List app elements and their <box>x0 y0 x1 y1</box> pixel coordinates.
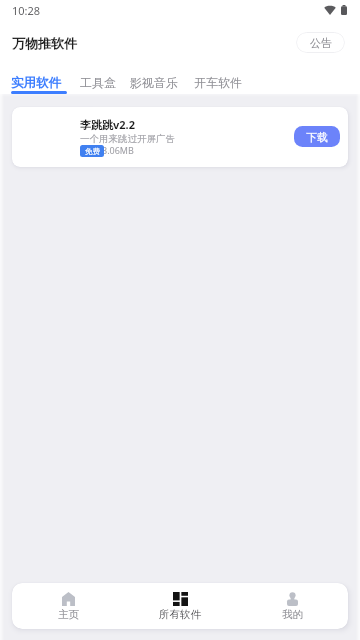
staticText: 影视音乐 <box>130 75 178 90</box>
button[interactable]: 公告 <box>296 32 345 53</box>
button[interactable]: 实用软件 <box>11 75 61 91</box>
staticText: 公告 <box>310 36 332 50</box>
staticText: 开车软件 <box>194 75 242 90</box>
button[interactable]: 工具盒 <box>80 75 116 90</box>
staticText: 所有软件 <box>159 608 201 621</box>
button[interactable]: 主页 <box>12 583 124 629</box>
button[interactable]: 李跳跳v2.2 <box>12 107 348 167</box>
staticText: 主页 <box>58 608 79 621</box>
staticText: 工具盒 <box>80 75 116 90</box>
staticText: 3.06MB <box>102 144 134 156</box>
staticText: 万物推软件 <box>12 35 77 51</box>
staticText: 下载 <box>306 130 328 144</box>
button[interactable]: 下载 <box>294 126 340 147</box>
other: Battery <box>341 5 347 15</box>
staticText: 一个用来跳过开屏广告 <box>80 133 175 145</box>
staticText: 实用软件 <box>11 75 61 91</box>
button[interactable]: 影视音乐 <box>130 75 178 90</box>
button[interactable]: 我的 <box>236 583 348 629</box>
staticText: 我的 <box>282 608 303 621</box>
staticText: 免费 <box>85 147 100 156</box>
button[interactable]: 所有软件 <box>124 583 236 629</box>
other: Wi-Fi <box>324 5 336 15</box>
button[interactable]: 开车软件 <box>194 75 242 90</box>
staticText: 李跳跳v2.2 <box>80 117 135 132</box>
staticText: 10:28 <box>12 3 41 18</box>
